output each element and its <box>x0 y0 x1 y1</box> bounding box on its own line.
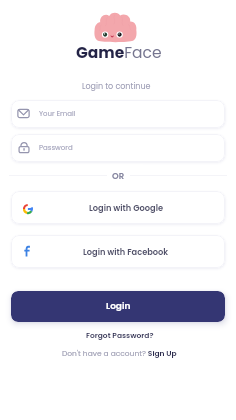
button[interactable]: Password input <box>11 134 225 162</box>
button[interactable]: Email input <box>11 100 225 128</box>
button[interactable]: Login with Facebook <box>11 235 225 268</box>
staticText: Don't have a account? Sign Up <box>62 348 177 358</box>
staticText: Login to continue <box>82 81 151 92</box>
button[interactable]: Login <box>11 291 225 322</box>
staticText: OR <box>112 170 125 182</box>
button[interactable]: Login with Google <box>11 191 225 224</box>
staticText: GameFace <box>76 42 162 64</box>
staticText: Login <box>106 300 131 313</box>
staticText: Forgot Password? <box>86 330 154 340</box>
staticText: Login with Facebook <box>83 246 169 258</box>
button[interactable]: Forgot Password? <box>80 327 160 343</box>
button[interactable]: Don't have a account? Sign Up <box>56 345 183 361</box>
staticText: Login with Google <box>89 202 164 214</box>
staticText: Your Email <box>39 109 76 119</box>
staticText: Password <box>39 143 73 153</box>
